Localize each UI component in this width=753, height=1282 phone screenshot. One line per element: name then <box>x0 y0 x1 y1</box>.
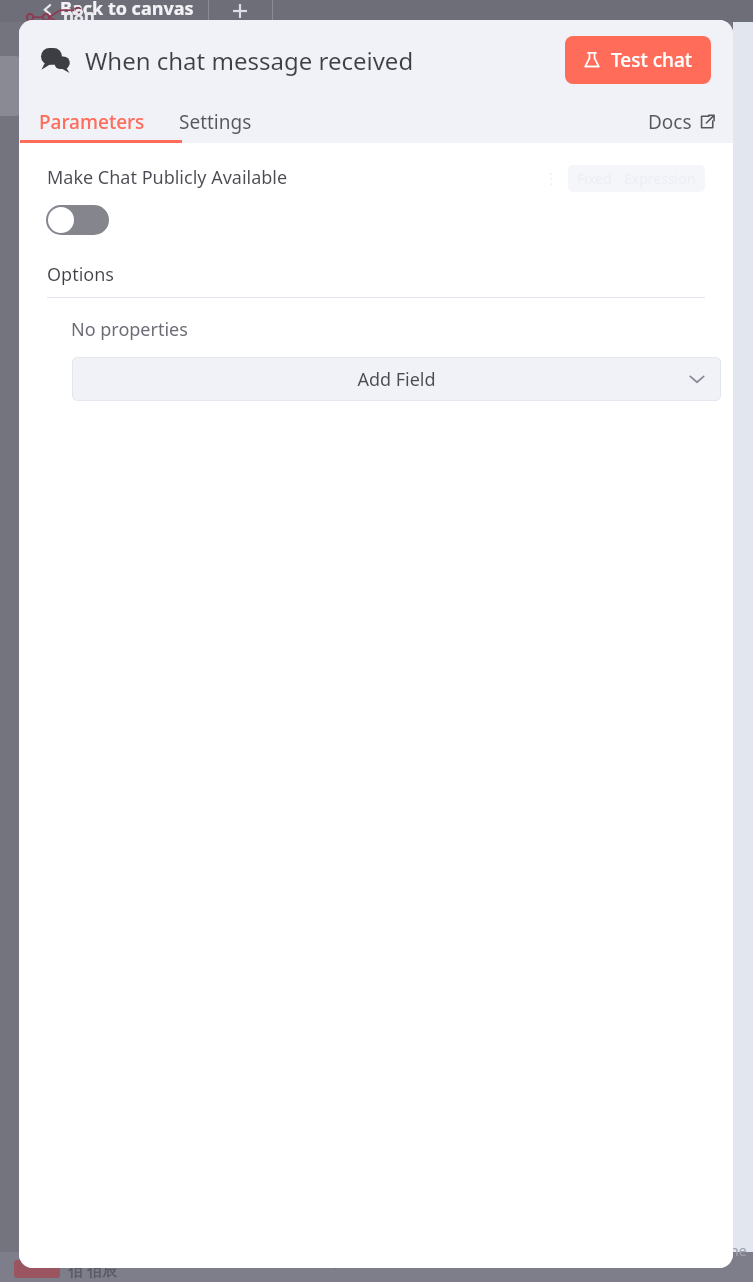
other: Open docs <box>699 114 715 130</box>
staticText: Back to canvas <box>60 0 194 21</box>
staticText: Parameters <box>39 109 145 135</box>
staticText: Docs <box>648 109 692 135</box>
staticText: When chat message received <box>85 44 414 77</box>
button[interactable]: Test chat <box>565 36 711 84</box>
staticText: Add Field <box>357 367 436 392</box>
staticText: ⋯ <box>228 1255 244 1274</box>
staticText: No properties <box>71 317 188 342</box>
staticText: Options <box>47 262 114 287</box>
button[interactable]: Make Chat Publicly Available toggle <box>46 205 109 235</box>
staticText: Make Chat Publicly Available <box>47 165 288 190</box>
button[interactable]: Settings <box>163 100 268 143</box>
staticText: Test chat <box>611 47 693 73</box>
button[interactable]: Add Field <box>72 357 721 401</box>
staticText: n8n <box>63 4 95 27</box>
button[interactable]: Parameters <box>21 100 163 143</box>
staticText: Settings <box>179 109 252 135</box>
staticText: he <box>730 1241 747 1260</box>
button[interactable]: Docs <box>630 101 733 143</box>
other: Chat node <box>41 45 71 75</box>
staticText: 佰 佰辰 <box>68 1260 117 1280</box>
